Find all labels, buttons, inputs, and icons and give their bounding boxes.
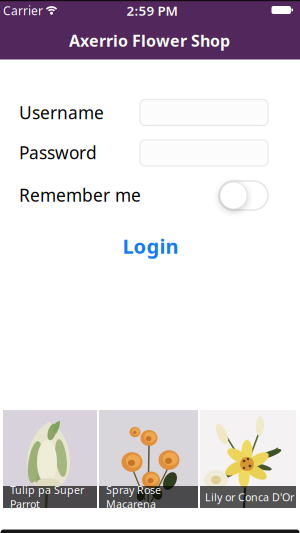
button[interactable]: Lily or Conca D'Or xyxy=(200,410,296,508)
staticText: 2:59 PM xyxy=(126,2,177,19)
button[interactable]: Remember me xyxy=(219,181,268,210)
button[interactable]: Username xyxy=(140,99,268,125)
staticText: Username xyxy=(19,101,104,124)
button[interactable]: Password xyxy=(140,140,268,166)
staticText: Password xyxy=(19,141,97,164)
button[interactable]: Spray Rose Macarena xyxy=(99,410,198,508)
staticText: Remember me xyxy=(19,183,141,206)
staticText: Spray Rose Macarena xyxy=(106,483,161,511)
staticText: Lily or Conca D'Or xyxy=(205,490,294,504)
staticText: Axerrio Flower Shop xyxy=(69,30,230,51)
staticText: Login xyxy=(122,233,178,259)
button[interactable]: Login xyxy=(114,229,186,263)
button[interactable]: Tulip pa Super Parrot xyxy=(3,410,97,508)
staticText: Carrier xyxy=(3,2,43,18)
staticText: Tulip pa Super Parrot xyxy=(10,483,84,511)
